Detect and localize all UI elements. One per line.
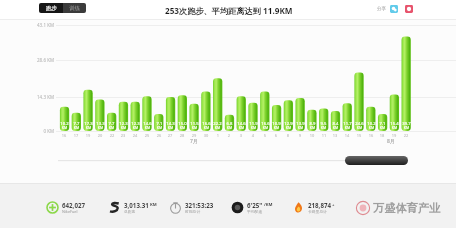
staticText: 19 xyxy=(82,133,94,138)
staticText: KM xyxy=(283,125,294,130)
staticText: KM xyxy=(271,125,282,130)
staticText: 16.6 xyxy=(201,121,212,127)
staticText: 15.4 xyxy=(389,121,400,127)
staticText: KM xyxy=(389,125,400,130)
button[interactable]: 6'25" xyxy=(231,201,273,214)
staticText: 12.9 xyxy=(283,121,294,127)
staticText: 22.2 xyxy=(212,121,223,127)
staticText: 7月 xyxy=(190,138,198,145)
staticText: 14.3 KM xyxy=(30,94,54,100)
staticText: NikeFuel xyxy=(62,209,78,214)
staticText: 6.8 xyxy=(224,121,235,127)
staticText: 10.9 xyxy=(271,121,282,127)
staticText: KM xyxy=(71,125,82,130)
staticText: 11 xyxy=(318,133,330,138)
staticText: 11.5 xyxy=(189,121,200,127)
button[interactable]: 642,027 xyxy=(46,201,85,214)
staticText: 6'25" xyxy=(247,201,263,209)
staticText: KM xyxy=(248,125,259,130)
staticText: 28.6 KM xyxy=(30,57,54,63)
staticText: KM xyxy=(401,125,412,130)
staticText: 39.7 xyxy=(401,121,412,127)
staticText: 11.7 xyxy=(342,121,353,127)
staticText: 1 xyxy=(212,133,224,138)
staticText: 15.0 xyxy=(177,121,188,127)
staticText: 27 xyxy=(164,133,176,138)
button[interactable]: Share to WeChat xyxy=(390,5,398,13)
staticText: 8月 xyxy=(387,138,395,145)
staticText: 8 xyxy=(282,133,294,138)
staticText: 29 xyxy=(188,133,200,138)
staticText: 跑步 xyxy=(46,5,57,12)
staticText: 25 xyxy=(141,133,153,138)
staticText: 12.3 xyxy=(130,121,141,127)
staticText: 10 xyxy=(306,133,318,138)
button[interactable]: 321:53:23 xyxy=(169,201,214,214)
staticText: 24.6 xyxy=(354,121,365,127)
button[interactable]: 3,013.31 xyxy=(108,201,157,214)
staticText: KM xyxy=(130,125,141,130)
staticText: 218,874 xyxy=(308,201,331,209)
staticText: 4 xyxy=(247,133,259,138)
staticText: 训练 xyxy=(69,5,80,12)
staticText: 5 xyxy=(259,133,271,138)
staticText: KM xyxy=(342,125,353,130)
staticText: 14.6 xyxy=(142,121,153,127)
staticText: KM xyxy=(142,125,153,130)
button[interactable]: 训练 xyxy=(63,3,86,13)
staticText: 14 xyxy=(341,133,353,138)
staticText: KM xyxy=(95,125,106,130)
staticText: 3,013.31 xyxy=(124,201,149,209)
staticText: 16 xyxy=(58,133,70,138)
staticText: 3 xyxy=(235,133,247,138)
staticText: 时间总计 xyxy=(185,209,201,214)
staticText: KM xyxy=(177,125,188,130)
staticText: KM xyxy=(318,125,329,130)
staticText: 22 xyxy=(106,133,118,138)
staticText: 28 xyxy=(176,133,188,138)
staticText: 7.1 xyxy=(377,121,388,127)
staticText: 卡路里总计 xyxy=(308,209,327,214)
staticText: 642,027 xyxy=(62,201,85,209)
staticText: 10.2 xyxy=(366,121,377,127)
staticText: 18 xyxy=(376,133,388,138)
staticText: KM xyxy=(118,125,129,130)
staticText: 7.7 xyxy=(106,121,117,127)
staticText: KM xyxy=(201,125,212,130)
staticText: 总距离 xyxy=(124,209,136,214)
staticText: 20 xyxy=(94,133,106,138)
staticText: 万盛体育产业 xyxy=(373,201,441,215)
staticText: 12.3 xyxy=(118,121,129,127)
staticText: 7.7 xyxy=(71,121,82,127)
staticText: 30 xyxy=(200,133,212,138)
staticText: KM xyxy=(330,125,341,130)
staticText: 7.1 xyxy=(154,121,165,127)
staticText: 0 KM xyxy=(30,128,54,134)
staticText: 8.4 xyxy=(330,121,341,127)
staticText: KM xyxy=(377,125,388,130)
staticText: 11.9 xyxy=(248,121,259,127)
staticText: KM xyxy=(236,125,247,130)
button[interactable]: Share to Weibo xyxy=(405,5,413,13)
button[interactable]: 跑步 xyxy=(39,3,63,13)
staticText: 24 xyxy=(129,133,141,138)
button[interactable]: 218,874 xyxy=(292,201,335,214)
staticText: KM xyxy=(354,125,365,130)
staticText: KM xyxy=(307,125,318,130)
staticText: 17.3 xyxy=(83,121,94,127)
staticText: 分享 xyxy=(377,6,387,12)
staticText: 8.9 xyxy=(307,121,318,127)
staticText: 16 xyxy=(365,133,377,138)
staticText: 9 xyxy=(294,133,306,138)
staticText: 13.3 xyxy=(95,121,106,127)
staticText: 16.6 xyxy=(260,121,271,127)
staticText: 19 xyxy=(388,133,400,138)
staticText: 43.1 KM xyxy=(30,22,54,28)
staticText: KM xyxy=(154,125,165,130)
staticText: KM xyxy=(165,125,176,130)
staticText: 22 xyxy=(400,133,412,138)
staticText: KM xyxy=(59,125,70,130)
staticText: 9.5 xyxy=(318,121,329,127)
staticText: 26 xyxy=(153,133,165,138)
staticText: KM xyxy=(212,125,223,130)
